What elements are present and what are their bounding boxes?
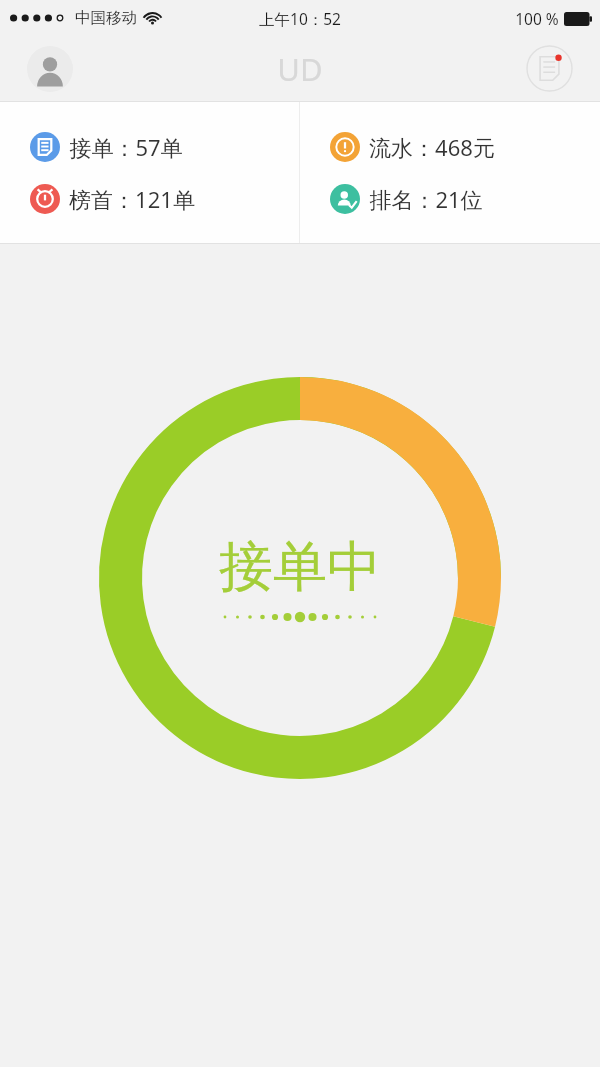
button[interactable]: Orders [526,45,573,92]
staticText: 流水：468元 [369,132,495,162]
button[interactable]: 榜首：121单 [30,184,299,214]
staticText: 上午10：52 [259,8,341,29]
button[interactable]: 流水：468元 [330,132,600,162]
button[interactable]: 接单：57单 [30,132,299,162]
button[interactable]: Profile [27,46,73,92]
button[interactable]: 接单中 [99,377,501,779]
staticText: 排名：21位 [369,184,483,214]
staticText: 接单中 [219,533,381,601]
staticText: 中国移动 [75,8,137,28]
staticText: 100 % [515,8,559,29]
staticText: 接单：57单 [69,132,183,162]
staticText: UD [277,48,323,90]
button[interactable]: 排名：21位 [330,184,600,214]
staticText: 榜首：121单 [69,184,195,214]
